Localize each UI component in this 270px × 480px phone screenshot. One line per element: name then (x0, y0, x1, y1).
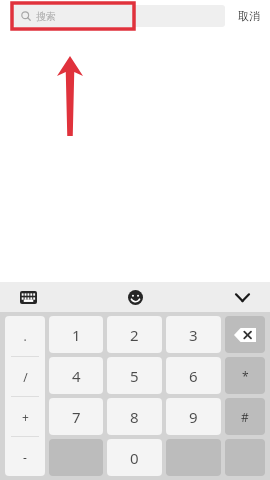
staticText: 0 (130, 448, 139, 468)
button[interactable]: 取消 (238, 0, 260, 32)
staticText: 7 (72, 407, 81, 427)
button[interactable]: Emoji (56, 282, 214, 312)
staticText: 6 (189, 366, 198, 386)
staticText: 1 (72, 325, 81, 345)
staticText: 2 (130, 325, 139, 345)
staticText: 搜索 (36, 10, 56, 23)
button[interactable]: Keyboard settings (0, 282, 56, 312)
staticText: 8 (130, 407, 139, 427)
staticText: - (23, 449, 27, 465)
button[interactable]: + (5, 397, 45, 436)
staticText: 9 (189, 407, 198, 427)
button[interactable]: 2 (107, 316, 162, 353)
button[interactable]: / (5, 357, 45, 396)
staticText: + (22, 409, 29, 425)
button[interactable]: 0 (107, 439, 162, 476)
button[interactable]: 6 (166, 357, 221, 394)
staticText: 5 (130, 366, 139, 386)
button[interactable]: # (225, 398, 265, 435)
button[interactable]: 搜索 (13, 5, 225, 27)
button[interactable]: 4 (49, 357, 103, 394)
button[interactable]: . (5, 316, 45, 356)
button[interactable]: - (5, 437, 45, 476)
button[interactable]: Backspace (225, 316, 265, 353)
button[interactable]: 5 (107, 357, 162, 394)
staticText: . (23, 328, 27, 344)
button[interactable]: 3 (166, 316, 221, 353)
button[interactable]: 8 (107, 398, 162, 435)
staticText: / (23, 369, 28, 385)
button[interactable]: * (225, 357, 265, 394)
staticText: # (241, 409, 249, 425)
button[interactable]: 9 (166, 398, 221, 435)
button[interactable]: 1 (49, 316, 103, 353)
staticText: * (242, 368, 249, 384)
staticText: 3 (189, 325, 198, 345)
staticText: 4 (72, 366, 81, 386)
button[interactable]: Hide keyboard (214, 282, 270, 312)
staticText: 取消 (238, 9, 260, 23)
button[interactable]: 7 (49, 398, 103, 435)
